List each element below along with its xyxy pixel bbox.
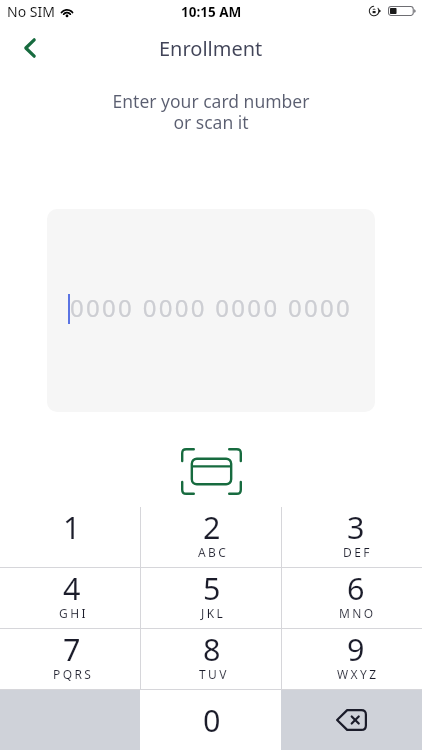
staticText: DEF <box>343 544 372 560</box>
staticText: 8 <box>203 628 222 670</box>
button[interactable]: 9 <box>281 629 422 689</box>
staticText: GHI <box>59 605 88 621</box>
staticText: 1 <box>63 506 82 548</box>
button[interactable]: Backspace <box>281 690 422 750</box>
button[interactable]: 8 <box>140 629 281 689</box>
staticText: 3 <box>347 506 366 548</box>
staticText: 4 <box>63 567 82 609</box>
button[interactable]: 5 <box>140 568 281 628</box>
button[interactable]: 0000 0000 0000 0000 <box>47 209 375 412</box>
staticText: 2 <box>203 506 222 548</box>
button[interactable]: 6 <box>281 568 422 628</box>
staticText: 9 <box>347 628 366 670</box>
staticText: Enrollment <box>159 35 263 62</box>
staticText: 5 <box>203 567 222 609</box>
staticText: TUV <box>199 666 229 682</box>
staticText: ABC <box>198 544 229 560</box>
button[interactable]: 0 <box>140 690 281 750</box>
staticText: PQRS <box>53 666 94 682</box>
staticText: WXYZ <box>337 666 379 682</box>
staticText: MNO <box>339 605 376 621</box>
staticText: Enter your card number or scan it <box>0 89 422 134</box>
staticText: 7 <box>63 628 82 670</box>
staticText: 0000 0000 0000 0000 <box>70 291 353 324</box>
button[interactable]: 2 <box>140 507 281 567</box>
button[interactable]: 3 <box>281 507 422 567</box>
staticText: JKL <box>201 605 226 621</box>
button[interactable]: 4 <box>0 568 140 628</box>
button[interactable]: Scan card <box>181 448 242 495</box>
staticText: No SIM <box>7 2 55 21</box>
staticText: 0 <box>203 699 222 741</box>
staticText: 6 <box>347 567 366 609</box>
staticText: 10:15 AM <box>181 3 242 21</box>
button[interactable]: Back <box>0 24 48 70</box>
button[interactable]: 1 <box>0 507 140 567</box>
button[interactable]: 7 <box>0 629 140 689</box>
